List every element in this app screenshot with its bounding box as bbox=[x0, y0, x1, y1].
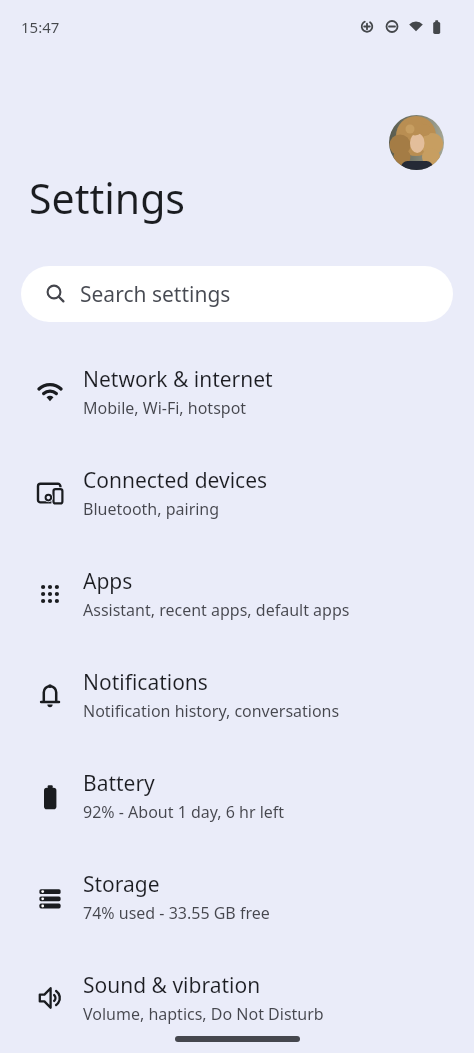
staticText: Mobile, Wi-Fi, hotspot bbox=[83, 397, 247, 419]
button[interactable]: Search settings bbox=[21, 266, 453, 322]
button[interactable]: Network & internet bbox=[0, 341, 474, 442]
button[interactable]: Battery bbox=[0, 745, 474, 846]
staticText: Notifications bbox=[83, 668, 208, 697]
button[interactable]: Notifications bbox=[0, 644, 474, 745]
staticText: Volume, haptics, Do Not Disturb bbox=[83, 1003, 324, 1025]
staticText: Notification history, conversations bbox=[83, 700, 340, 722]
button[interactable]: Sound & vibration bbox=[0, 947, 474, 1048]
button[interactable]: Storage bbox=[0, 846, 474, 947]
staticText: 15:47 bbox=[21, 17, 60, 37]
staticText: 92% - About 1 day, 6 hr left bbox=[83, 801, 285, 823]
button[interactable]: Apps bbox=[0, 543, 474, 644]
staticText: Search settings bbox=[80, 280, 231, 309]
staticText: 74% used - 33.55 GB free bbox=[83, 902, 270, 924]
staticText: Connected devices bbox=[83, 466, 268, 495]
staticText: Bluetooth, pairing bbox=[83, 498, 220, 520]
staticText: Battery bbox=[83, 769, 155, 798]
button[interactable] bbox=[389, 115, 444, 170]
staticText: Storage bbox=[83, 870, 160, 899]
staticText: Network & internet bbox=[83, 365, 273, 394]
staticText: Sound & vibration bbox=[83, 971, 261, 1000]
button[interactable]: Connected devices bbox=[0, 442, 474, 543]
staticText: Assistant, recent apps, default apps bbox=[83, 599, 350, 621]
staticText: Settings bbox=[29, 170, 186, 226]
staticText: Apps bbox=[83, 567, 133, 596]
